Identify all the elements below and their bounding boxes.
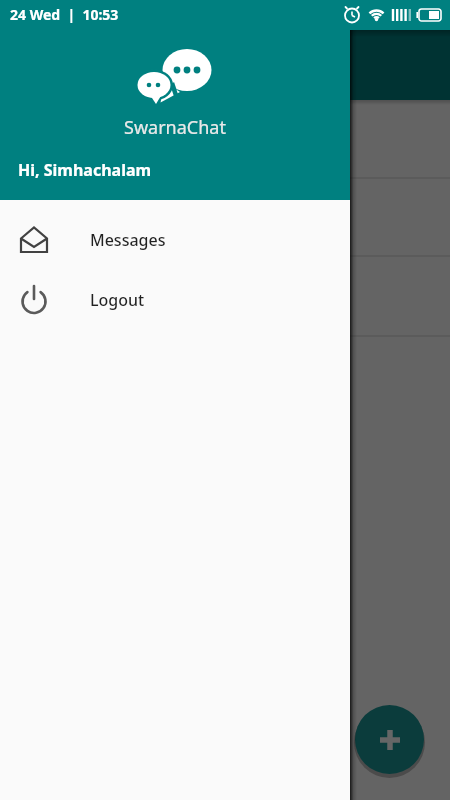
- button[interactable]: Messages: [0, 212, 350, 268]
- staticText: Hi, Simhachalam: [18, 159, 152, 181]
- button[interactable]: Logout: [0, 272, 350, 328]
- staticText: 24 Wed | 10:53: [10, 5, 119, 24]
- staticText: Messages: [90, 229, 166, 251]
- button[interactable]: [355, 705, 424, 774]
- staticText: Logout: [90, 289, 145, 311]
- staticText: SwarnaChat: [124, 115, 226, 140]
